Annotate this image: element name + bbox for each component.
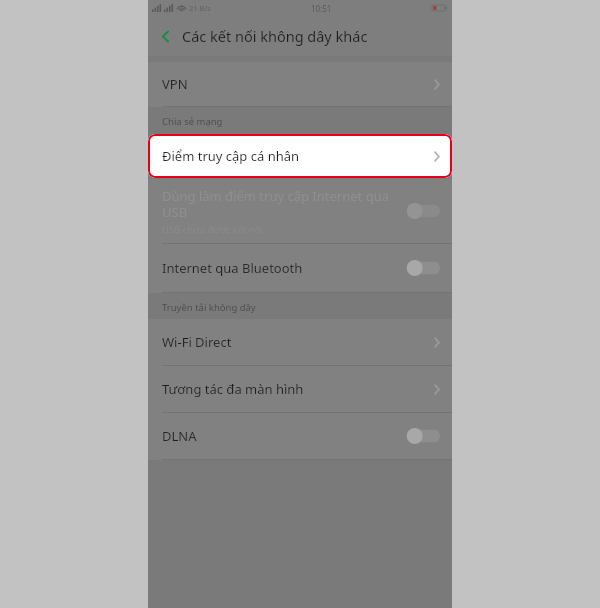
staticText: Tương tác đa màn hình — [162, 380, 434, 398]
button[interactable]: Điểm truy cập cá nhân — [148, 134, 452, 178]
staticText: Chia sẻ mạng — [162, 115, 223, 128]
staticText: Điểm truy cập cá nhân — [162, 147, 434, 165]
staticText: DLNA — [162, 427, 406, 445]
staticText: Các kết nối không dây khác — [182, 26, 368, 46]
button[interactable]: Tương tác đa màn hình — [148, 366, 452, 412]
button[interactable]: DLNA — [148, 413, 452, 459]
button[interactable]: Internet qua Bluetooth — [148, 244, 452, 292]
button[interactable]: Wi-Fi Direct — [148, 319, 452, 365]
staticText: 10:51 — [311, 3, 332, 14]
button[interactable]: Dùng làm điểm truy cập Internet qua USB — [148, 179, 452, 243]
button[interactable]: Back — [148, 19, 182, 53]
staticText: Internet qua Bluetooth — [162, 259, 406, 277]
staticText: Dùng làm điểm truy cập Internet qua USB — [162, 187, 389, 220]
staticText: Truyền tải không dây — [162, 301, 256, 314]
staticText: Wi-Fi Direct — [162, 333, 434, 351]
staticText: VPN — [162, 75, 434, 93]
button[interactable]: VPN — [148, 62, 452, 106]
staticText: 21 B/s — [189, 3, 211, 13]
